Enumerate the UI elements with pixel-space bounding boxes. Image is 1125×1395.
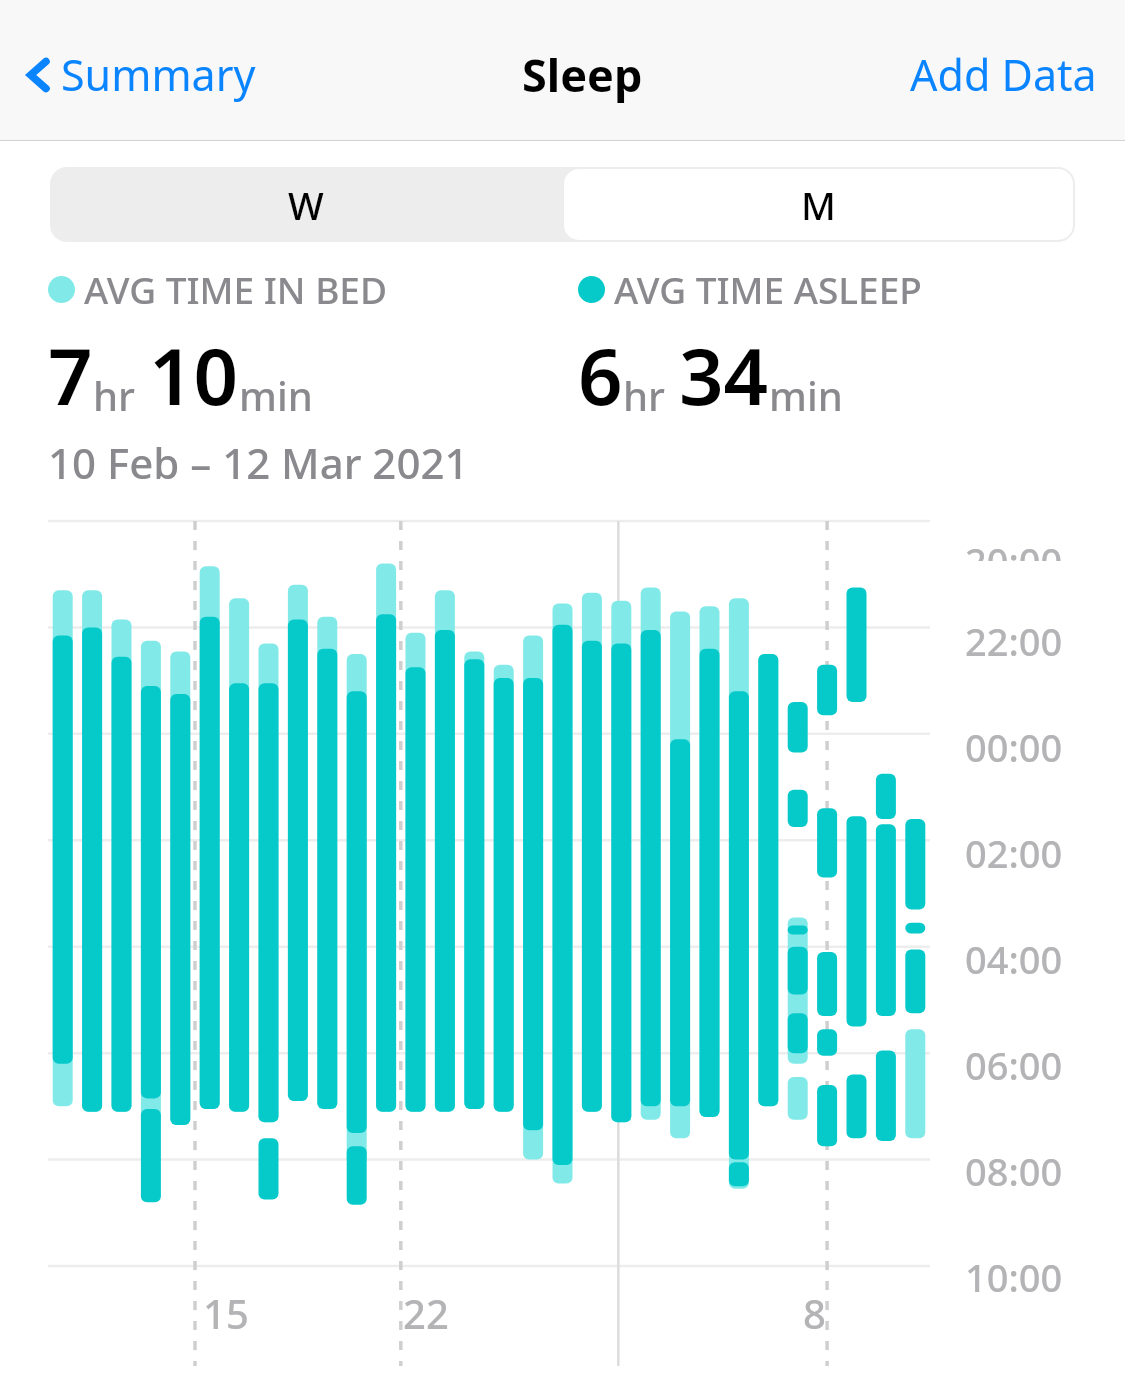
- staticText: 15: [203, 1286, 249, 1340]
- staticText: 10: [149, 322, 239, 428]
- staticText: Add Data: [910, 45, 1097, 104]
- staticText: AVG TIME IN BED: [84, 264, 388, 314]
- staticText: AVG TIME ASLEEP: [614, 264, 922, 314]
- button[interactable]: Add Data: [904, 37, 1103, 112]
- staticText: hr: [93, 368, 135, 422]
- staticText: 00:00: [965, 721, 1063, 773]
- staticText: 34: [679, 322, 769, 428]
- staticText: 6: [578, 322, 623, 428]
- staticText: 10 Feb – 12 Mar 2021: [48, 434, 469, 491]
- staticText: 10:00: [965, 1251, 1063, 1303]
- staticText: 22: [403, 1286, 449, 1340]
- staticText: 06:00: [965, 1039, 1063, 1091]
- staticText: Summary: [61, 45, 256, 104]
- staticText: 02:00: [965, 827, 1063, 879]
- button[interactable]: M: [564, 169, 1073, 240]
- staticText: Sleep: [522, 44, 643, 105]
- staticText: 08:00: [965, 1145, 1063, 1197]
- staticText: 8: [803, 1286, 826, 1340]
- staticText: 04:00: [965, 933, 1063, 985]
- staticText: min: [239, 368, 313, 422]
- button[interactable]: W: [50, 167, 562, 242]
- staticText: 20:00: [965, 535, 1063, 561]
- button[interactable]: Summary: [22, 37, 262, 112]
- staticText: min: [769, 368, 843, 422]
- staticText: W: [288, 179, 324, 231]
- staticText: M: [801, 179, 836, 231]
- staticText: hr: [623, 368, 665, 422]
- staticText: 7: [48, 322, 93, 428]
- staticText: 22:00: [965, 615, 1063, 667]
